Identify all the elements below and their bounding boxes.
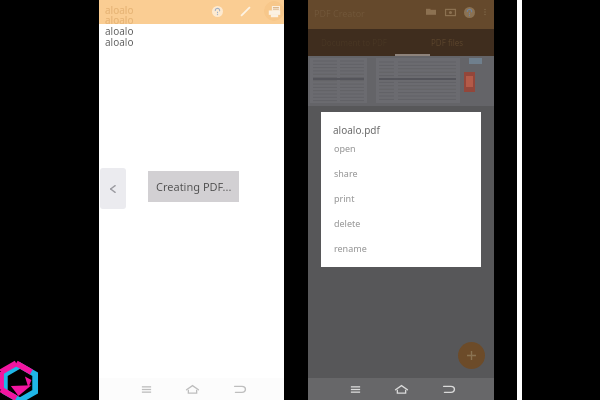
button[interactable]: rename: [321, 235, 481, 260]
staticText: PDF files: [431, 37, 464, 48]
button[interactable]: Help: [209, 3, 225, 19]
staticText: share: [334, 167, 358, 179]
button[interactable]: Home: [390, 378, 412, 400]
staticText: print: [334, 192, 355, 204]
button[interactable]: Recents: [135, 378, 157, 400]
button[interactable]: open: [321, 135, 481, 160]
button[interactable]: Edit: [237, 3, 253, 19]
staticText: rename: [334, 242, 367, 254]
staticText: delete: [334, 217, 361, 229]
button[interactable]: Camera: [443, 5, 457, 19]
staticText: aloalo.pdf: [333, 123, 380, 137]
button[interactable]: delete: [321, 210, 481, 235]
staticText: Creating PDF...: [156, 179, 232, 194]
button[interactable]: Back: [438, 378, 460, 400]
button[interactable]: Home: [181, 378, 203, 400]
staticText: PDF Creator: [314, 7, 365, 19]
staticText: open: [334, 142, 356, 154]
button[interactable]: share: [321, 160, 481, 185]
button[interactable]: PDF files: [401, 29, 494, 56]
staticText: aloalo: [105, 3, 134, 17]
button[interactable]: Help: [462, 5, 476, 19]
staticText: aloalo: [105, 35, 134, 49]
button[interactable]: print: [321, 185, 481, 210]
button[interactable]: More options: [479, 6, 491, 18]
button[interactable]: Recents: [344, 378, 366, 400]
button[interactable]: Add: [458, 342, 485, 369]
button[interactable]: Save as PDF: [264, 1, 284, 21]
button[interactable]: Back: [229, 378, 251, 400]
button[interactable]: Folder: [424, 5, 438, 19]
staticText: aloalo: [105, 13, 134, 27]
staticText: aloalo: [105, 24, 134, 38]
button[interactable]: Back: [100, 168, 126, 209]
button[interactable]: Document to PDF: [308, 29, 401, 56]
